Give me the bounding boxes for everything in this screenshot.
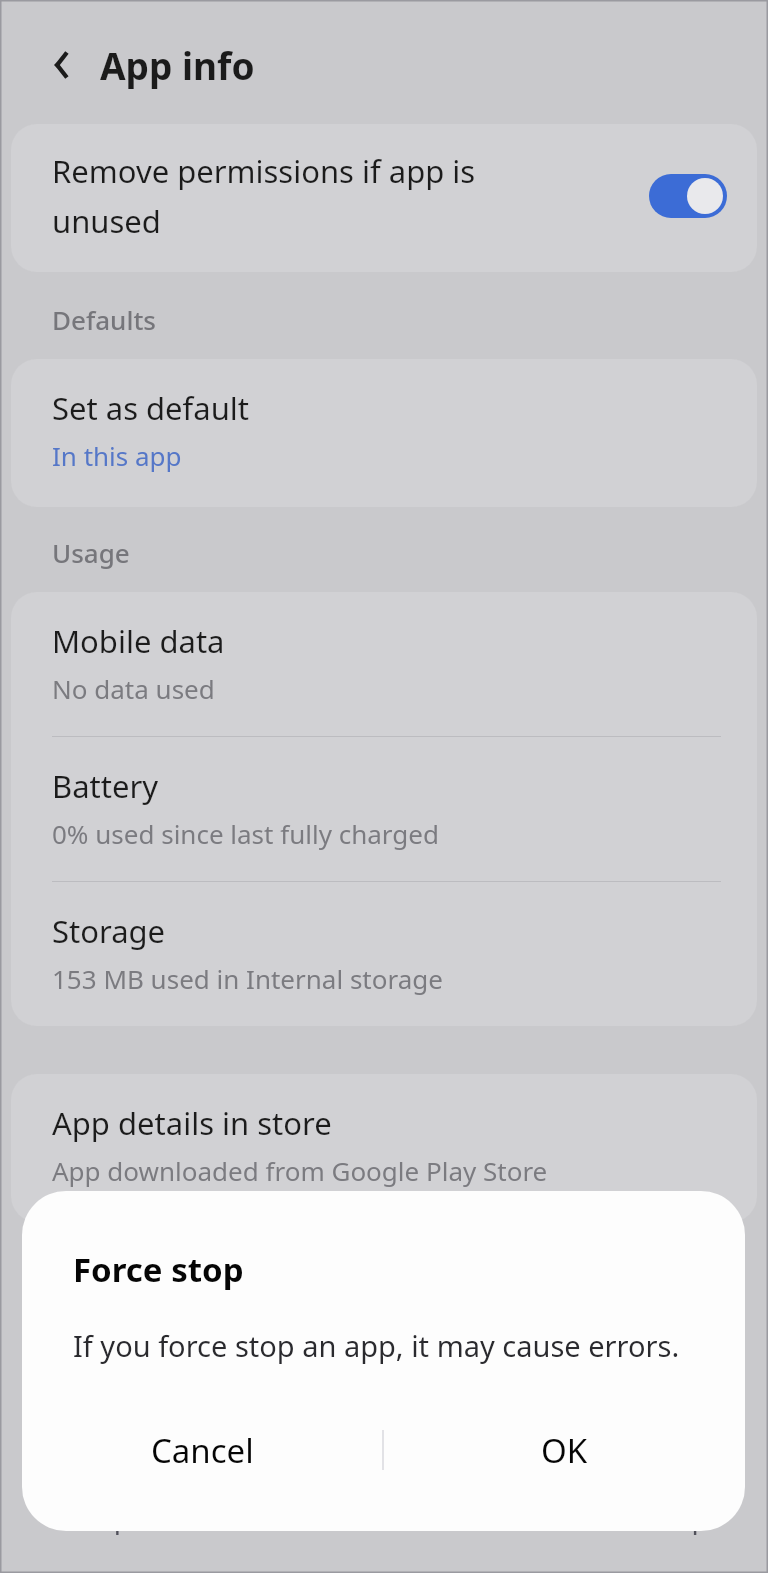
button[interactable]: Remove permissions toggle [649,174,727,218]
staticText: App downloaded from Google Play Store [52,1153,548,1188]
button[interactable]: Force stop [512,1493,768,1573]
staticText: Mobile data [52,620,225,662]
button[interactable]: Back [38,41,86,89]
staticText: Usage [52,535,130,570]
button[interactable]: Uninstall [256,1493,512,1573]
staticText: Force stop [572,1498,709,1536]
staticText: Storage [52,910,166,952]
staticText: 153 MB used in Internal storage [52,961,443,996]
staticText: OK [541,1428,588,1473]
button[interactable]: Mobile data [11,592,757,736]
staticText: Remove permissions if app is [52,150,476,192]
button[interactable]: Cancel [22,1409,382,1491]
button[interactable]: Set as default [11,359,757,507]
button[interactable]: Open [0,1493,256,1573]
button[interactable]: Battery [11,737,757,881]
staticText: App details in store [52,1102,332,1144]
staticText: In this app [52,438,182,473]
staticText: Defaults [52,302,157,337]
button[interactable]: OK [384,1409,745,1491]
staticText: No data used [52,671,215,706]
staticText: 0% used since last fully charged [52,816,439,851]
staticText: Battery [52,765,159,807]
staticText: If you force stop an app, it may cause e… [73,1326,680,1365]
staticText: unused [52,200,161,242]
staticText: Force stop [73,1247,244,1292]
button[interactable]: Storage [11,882,757,1026]
staticText: Uninstall [326,1498,442,1536]
staticText: Cancel [151,1428,254,1473]
staticText: Set as default [52,387,250,429]
button[interactable]: App details in store [11,1074,757,1222]
staticText: App info [100,40,255,90]
staticText: Open [92,1498,165,1536]
button[interactable]: Remove permissions if app is [11,124,757,272]
